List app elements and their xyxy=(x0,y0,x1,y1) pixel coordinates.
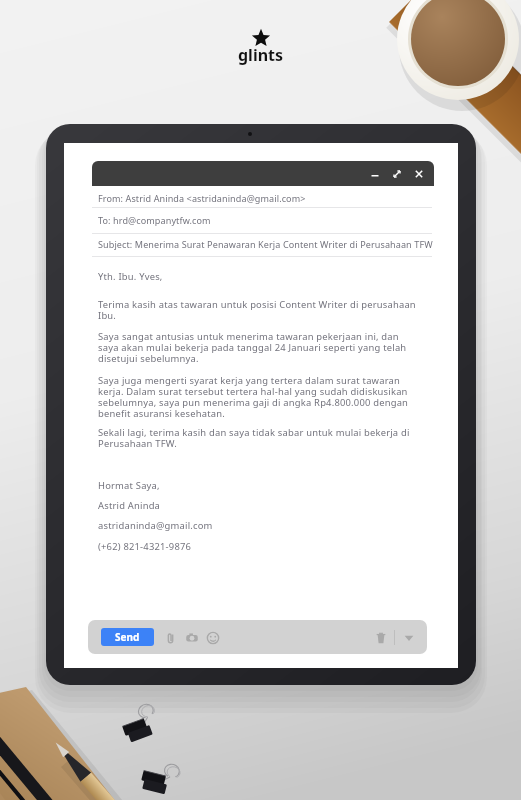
button[interactable]: Send xyxy=(101,628,154,646)
staticText: From: Astrid Aninda <astridaninda@gmail.… xyxy=(98,192,306,204)
staticText: Subject: Menerima Surat Penawaran Kerja … xyxy=(98,238,433,250)
staticText: Saya juga mengerti syarat kerja yang ter… xyxy=(98,374,438,419)
staticText: Sekali lagi, terima kasih dan saya tidak… xyxy=(98,426,438,449)
staticText: To: hrd@companytfw.com xyxy=(98,214,211,226)
staticText: (+62) 821-4321-9876 xyxy=(98,540,438,553)
button[interactable]: Minimize xyxy=(366,165,383,182)
staticText: Terima kasih atas tawaran untuk posisi C… xyxy=(98,298,438,321)
button[interactable]: Insert photo xyxy=(183,629,200,646)
staticText: astridaninda@gmail.com xyxy=(98,519,438,532)
staticText: Yth. Ibu. Yves, xyxy=(98,270,438,283)
button[interactable]: Delete draft xyxy=(372,629,389,646)
staticText: glints xyxy=(238,44,284,66)
staticText: Send xyxy=(115,630,140,644)
button[interactable]: Attach file xyxy=(162,629,179,646)
button[interactable]: Close xyxy=(410,165,427,182)
button[interactable]: More options xyxy=(400,629,417,646)
button[interactable]: Expand xyxy=(388,165,405,182)
staticText: Saya sangat antusias untuk menerima tawa… xyxy=(98,330,438,364)
staticText: Astrid Aninda xyxy=(98,499,438,512)
staticText: Hormat Saya, xyxy=(98,479,438,492)
button[interactable]: Insert emoji xyxy=(204,629,221,646)
